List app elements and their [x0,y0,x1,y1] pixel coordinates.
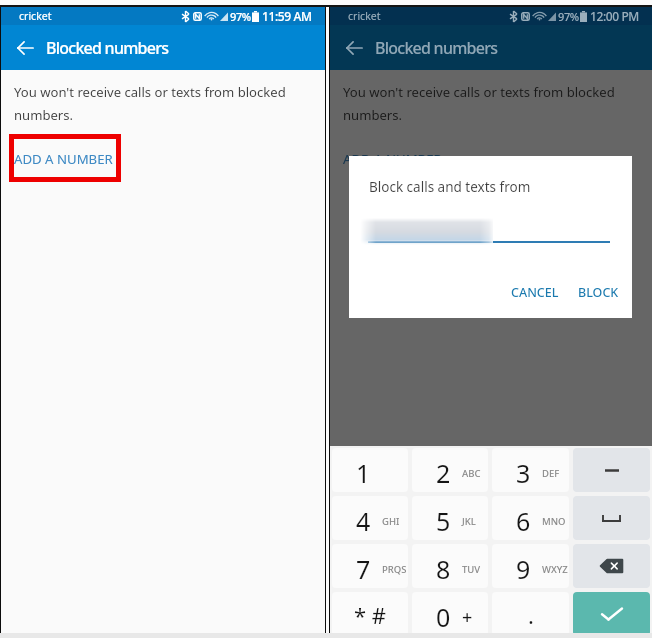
button[interactable]: BLOCK [578,284,619,301]
button[interactable]: ok [573,592,650,636]
staticText: MNO [542,515,566,528]
button[interactable]: 7 [332,544,408,588]
button[interactable]: * # [332,592,408,636]
staticText: 12:00 PM [590,8,639,24]
button[interactable]: 1 [332,448,408,492]
staticText: + [462,605,473,630]
staticText: Blocked numbers [46,37,169,59]
staticText: 2 [436,456,451,490]
staticText: DEF [542,467,560,480]
button[interactable]: Back [338,32,370,64]
staticText: ADD A NUMBER [14,150,113,168]
button[interactable]: minus [573,448,650,492]
staticText: 1 [356,456,371,490]
staticText: 3 [516,456,531,490]
staticText: Block calls and texts from [369,178,531,196]
staticText: 8 [436,552,451,586]
button[interactable]: 4 [332,496,408,540]
staticText: cricket [348,9,381,23]
staticText: PRQS [382,563,407,576]
button[interactable]: 5 [412,496,488,540]
staticText: 4 [356,504,371,538]
staticText: TUV [462,563,481,576]
staticText: JKL [462,515,476,528]
button[interactable]: ADD A NUMBER [343,150,442,168]
staticText: BLOCK [578,284,619,301]
staticText: ABC [462,467,481,480]
staticText: 6 [516,504,531,538]
button[interactable]: . [492,592,569,636]
staticText: You won't receive calls or texts from bl… [14,83,286,124]
button[interactable]: 2 [412,448,488,492]
button[interactable]: Back [9,32,41,64]
button[interactable]: 0 [412,592,488,636]
button[interactable]: 9 [492,544,569,588]
staticText: ADD A NUMBER [343,150,442,168]
button[interactable]: space [573,496,650,540]
staticText: cricket [19,9,52,23]
button[interactable]: 6 [492,496,569,540]
staticText: 97% [558,9,579,24]
button[interactable]: del [573,544,650,588]
staticText: 9 [516,552,531,586]
staticText: 11:59 AM [262,8,312,24]
button[interactable]: 3 [492,448,569,492]
staticText: You won't receive calls or texts from bl… [343,83,615,124]
button[interactable]: CANCEL [511,284,559,301]
staticText: Blocked numbers [375,37,498,59]
staticText: 5 [436,504,451,538]
staticText: 0 [436,600,451,634]
staticText: * # [354,600,387,630]
staticText: 7 [356,552,371,586]
staticText: WXYZ [542,563,568,576]
staticText: . [528,600,534,630]
button[interactable]: 8 [412,544,488,588]
staticText: 97% [230,9,251,24]
staticText: CANCEL [511,284,559,301]
button[interactable]: ADD A NUMBER [14,150,113,168]
staticText: GHI [382,515,400,528]
